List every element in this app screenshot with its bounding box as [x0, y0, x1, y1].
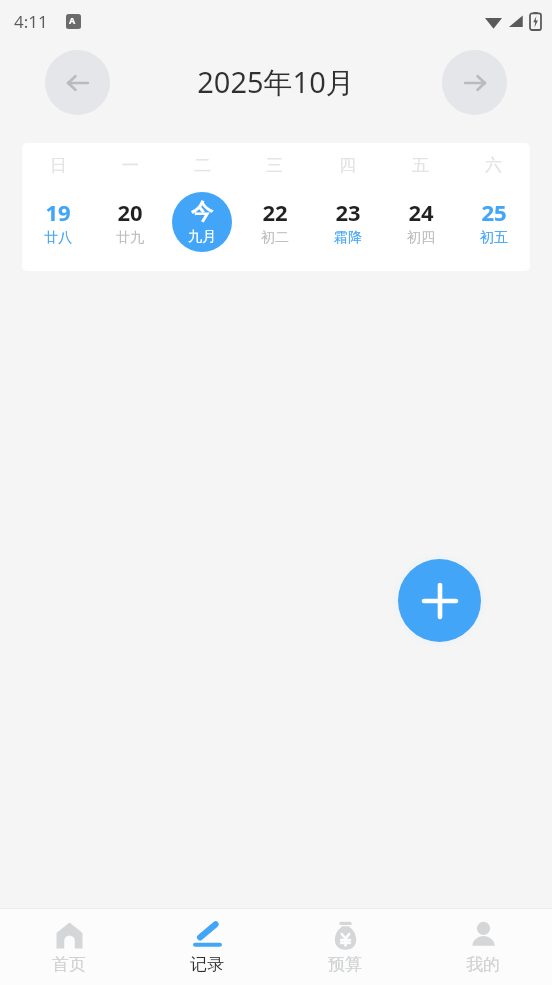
button[interactable]: 今: [166, 191, 238, 253]
button[interactable]: 19: [22, 191, 94, 253]
staticText: 廿八: [44, 229, 72, 247]
staticText: 今: [191, 198, 213, 226]
staticText: A: [69, 14, 76, 26]
button[interactable]: Previous month: [45, 50, 110, 115]
staticText: 初五: [480, 229, 508, 247]
button[interactable]: 首页: [0, 909, 138, 985]
staticText: 五: [412, 155, 429, 176]
button[interactable]: Next month: [442, 50, 507, 115]
staticText: 日: [50, 155, 67, 176]
button[interactable]: 我的: [414, 909, 552, 985]
staticText: 25: [481, 197, 507, 227]
button[interactable]: 22: [238, 191, 311, 253]
staticText: 22: [262, 197, 288, 227]
staticText: 一: [122, 155, 139, 176]
staticText: 初四: [407, 229, 435, 247]
staticText: 廿九: [116, 229, 144, 247]
button[interactable]: Add record: [398, 559, 481, 642]
staticText: 2025年10月: [197, 62, 355, 102]
staticText: 六: [485, 155, 502, 176]
staticText: 初二: [261, 229, 289, 247]
button[interactable]: 20: [94, 191, 166, 253]
button[interactable]: 24: [384, 191, 457, 253]
staticText: 24: [408, 197, 434, 227]
staticText: 首页: [52, 954, 86, 975]
button[interactable]: 预算: [276, 909, 414, 985]
staticText: 4:11: [14, 10, 48, 33]
staticText: 20: [117, 197, 143, 227]
staticText: 预算: [328, 954, 362, 975]
staticText: 四: [339, 155, 356, 176]
staticText: 我的: [466, 954, 500, 975]
button[interactable]: 23: [311, 191, 384, 253]
staticText: 九月: [188, 228, 216, 246]
staticText: 霜降: [334, 229, 362, 247]
button[interactable]: 记录: [138, 909, 276, 985]
staticText: 记录: [190, 954, 224, 975]
staticText: 三: [266, 155, 283, 176]
staticText: 二: [194, 155, 211, 176]
button[interactable]: 25: [457, 191, 530, 253]
staticText: 19: [45, 197, 71, 227]
staticText: 23: [335, 197, 361, 227]
